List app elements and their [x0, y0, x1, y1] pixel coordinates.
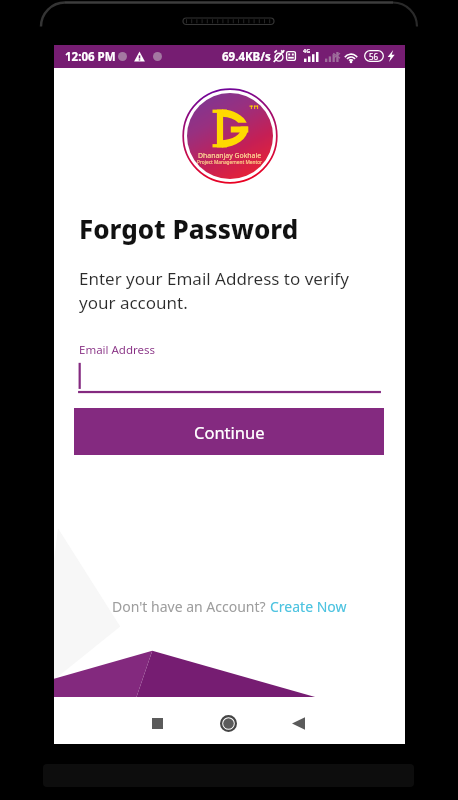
- button[interactable]: Home: [203, 700, 253, 747]
- staticText: 4G: [303, 47, 311, 54]
- button[interactable]: Continue: [74, 408, 384, 455]
- button[interactable]: Recents: [132, 700, 182, 747]
- button[interactable]: Create Now: [270, 597, 347, 616]
- staticText: Continue: [194, 421, 265, 443]
- staticText: Email Address: [79, 342, 156, 358]
- button[interactable]: Back: [273, 700, 323, 747]
- staticText: 12:06 PM: [65, 49, 116, 65]
- staticText: Project Management Mentor: [197, 159, 263, 166]
- staticText: Forgot Password: [79, 211, 299, 246]
- staticText: 56: [369, 51, 379, 62]
- staticText: Enter your Email Address to verify your …: [79, 267, 349, 314]
- staticText: Don't have an Account?: [112, 597, 270, 616]
- staticText: Dhananjay Gokhale: [198, 151, 262, 160]
- staticText: 69.4KB/s: [222, 49, 271, 65]
